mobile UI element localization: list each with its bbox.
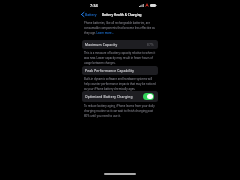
staticText: Battery Health & Charging [102,13,142,17]
staticText: 87% [147,43,154,47]
staticText: Built-in dynamic software and hardware s… [84,77,156,91]
staticText: Maximum Capacity [85,43,118,47]
button[interactable]: Maximum Capacity [82,40,158,49]
staticText: This is a measure of battery capacity re… [84,51,156,65]
staticText: Optimized Battery Charging [85,95,133,99]
button[interactable]: Peak Performance Capability [82,66,158,75]
button[interactable]: Optimized Battery Charging [82,91,158,102]
button[interactable]: Optimized Battery Charging toggle [143,93,154,100]
staticText: To reduce battery aging, iPhone learns f… [84,104,156,118]
staticText: Peak Performance Capability [85,69,135,73]
staticText: Phone batteries, like all rechargeable b… [84,21,156,35]
staticText: 7:34 [90,3,98,8]
staticText: Battery [85,12,97,17]
button[interactable]: Battery [78,12,99,17]
